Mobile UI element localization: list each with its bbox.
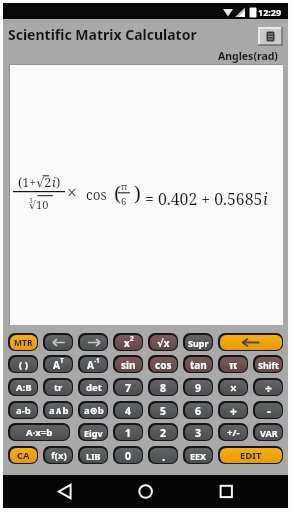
- button[interactable]: EDIT: [218, 446, 283, 464]
- button[interactable]: Supr: [183, 333, 213, 351]
- staticText: a∧b: [49, 404, 69, 417]
- button[interactable]: [78, 333, 108, 351]
- staticText: √x: [157, 336, 170, 350]
- button[interactable]: 2: [148, 423, 178, 441]
- staticText: ÷: [265, 380, 272, 395]
- staticText: A:B: [16, 381, 32, 394]
- button[interactable]: A·x=b: [8, 423, 70, 441]
- staticText: 7: [125, 381, 132, 395]
- staticText: +: [230, 403, 237, 418]
- staticText: -1: [94, 357, 100, 365]
- staticText: (1+√2: [18, 174, 52, 191]
- button[interactable]: a-b: [8, 401, 38, 419]
- staticText: ×: [67, 180, 77, 204]
- staticText: 0: [125, 449, 132, 463]
- staticText: 3: [29, 196, 33, 205]
- staticText: Scientific Matrix Calculator: [8, 25, 197, 44]
- staticText: x: [124, 336, 130, 350]
- button[interactable]: tr: [43, 378, 73, 396]
- button[interactable]: ( ): [8, 355, 38, 373]
- button[interactable]: x: [113, 333, 143, 351]
- staticText: A: [87, 358, 94, 372]
- button[interactable]: LIB: [78, 446, 108, 464]
- staticText: Supr: [188, 337, 209, 349]
- button[interactable]: f(x): [43, 446, 73, 464]
- button[interactable]: MTR: [8, 333, 38, 351]
- button[interactable]: 5: [148, 401, 178, 419]
- staticText: +/-: [227, 426, 240, 439]
- button[interactable]: ×: [218, 378, 248, 396]
- staticText: det: [86, 381, 102, 394]
- staticText: ×: [230, 380, 237, 395]
- staticText: 12:29: [258, 6, 282, 18]
- button[interactable]: ÷: [253, 378, 283, 396]
- staticText: CA: [17, 449, 30, 462]
- button[interactable]: +/-: [218, 423, 248, 441]
- button[interactable]: [43, 333, 73, 351]
- button[interactable]: 6: [183, 401, 213, 419]
- staticText: ( ): [19, 358, 28, 371]
- button[interactable]: 1: [113, 423, 143, 441]
- button[interactable]: 0: [113, 446, 143, 464]
- button[interactable]: 7: [113, 378, 143, 396]
- button[interactable]: A:B: [8, 378, 38, 396]
- staticText: .: [162, 448, 166, 463]
- button[interactable]: CA: [8, 446, 38, 464]
- staticText: a⊗b: [84, 404, 104, 417]
- button[interactable]: [218, 333, 283, 351]
- button[interactable]: [51, 478, 78, 505]
- button[interactable]: a∧b: [43, 401, 73, 419]
- staticText: 4: [125, 404, 132, 418]
- staticText: -: [267, 403, 271, 418]
- staticText: π: [229, 357, 238, 372]
- button[interactable]: A: [43, 355, 73, 373]
- button[interactable]: .: [148, 446, 178, 464]
- button[interactable]: [258, 27, 283, 46]
- staticText: Shift: [258, 359, 279, 371]
- staticText: = 0.402 + 0.5685: [145, 188, 263, 210]
- button[interactable]: [132, 478, 159, 505]
- staticText: A·x=b: [26, 426, 53, 439]
- button[interactable]: A: [78, 355, 108, 373]
- staticText: MTR: [14, 337, 33, 349]
- button[interactable]: π: [218, 355, 248, 373]
- staticText: cos: [155, 358, 172, 372]
- button[interactable]: tan: [183, 355, 213, 373]
- button[interactable]: [213, 478, 240, 505]
- staticText: f(x): [51, 449, 67, 462]
- staticText: i: [52, 174, 56, 191]
- button[interactable]: 9: [183, 378, 213, 396]
- staticText: sin: [121, 358, 136, 372]
- staticText: Angles(rad): [218, 49, 278, 63]
- button[interactable]: 8: [148, 378, 178, 396]
- staticText: T: [60, 357, 64, 365]
- button[interactable]: sin: [113, 355, 143, 373]
- staticText: 5: [160, 404, 167, 418]
- staticText: A: [53, 358, 60, 372]
- staticText: tr: [54, 381, 63, 394]
- staticText: i: [263, 188, 268, 210]
- button[interactable]: 4: [113, 401, 143, 419]
- staticText: LIB: [86, 450, 101, 462]
- staticText: 3: [195, 426, 202, 440]
- button[interactable]: Eigv: [78, 423, 108, 441]
- staticText: Eigv: [84, 427, 103, 439]
- button[interactable]: -: [253, 401, 283, 419]
- button[interactable]: +: [218, 401, 248, 419]
- button[interactable]: √x: [148, 333, 178, 351]
- staticText: π: [121, 180, 128, 193]
- staticText: 9: [195, 381, 202, 395]
- staticText: 2: [160, 426, 167, 440]
- button[interactable]: VAR: [253, 423, 283, 441]
- button[interactable]: 3: [183, 423, 213, 441]
- button[interactable]: a⊗b: [78, 401, 108, 419]
- staticText: EDIT: [240, 449, 262, 462]
- staticText: 6: [121, 195, 127, 208]
- button[interactable]: EEX: [183, 446, 213, 464]
- button[interactable]: Shift: [253, 355, 283, 373]
- button[interactable]: det: [78, 378, 108, 396]
- staticText: ): [56, 174, 61, 191]
- staticText: VAR: [260, 427, 278, 439]
- staticText: tan: [190, 358, 207, 372]
- button[interactable]: cos: [148, 355, 178, 373]
